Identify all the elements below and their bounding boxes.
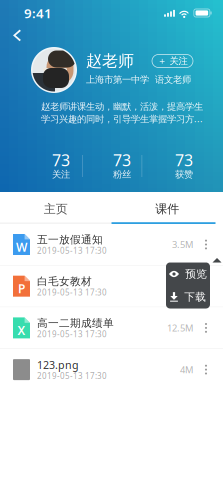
- staticText: 赵老师讲课生动，幽默，活泼，提高学生学习兴趣的同时，引导学生掌握学习方法、学习技…: [41, 101, 211, 125]
- staticText: 预览: [185, 267, 207, 280]
- staticText: 获赞: [175, 169, 193, 180]
- button[interactable]: More options: [197, 236, 215, 252]
- staticText: 上海市第一中学 语文老师: [86, 74, 191, 85]
- staticText: 73: [113, 149, 131, 171]
- staticText: 下载: [184, 290, 206, 303]
- staticText: X: [17, 322, 25, 338]
- button[interactable]: 123.png: [0, 349, 223, 390]
- button[interactable]: Back: [0, 26, 30, 45]
- button[interactable]: 73: [94, 153, 150, 179]
- staticText: P: [18, 281, 25, 297]
- staticText: 2019-05-13 17:30: [37, 370, 107, 381]
- staticText: 123.png: [37, 358, 79, 372]
- staticText: 73: [175, 149, 193, 171]
- button[interactable]: 下载: [166, 285, 210, 308]
- staticText: 粉丝: [113, 169, 131, 180]
- button[interactable]: P: [0, 266, 223, 307]
- button[interactable]: 主页: [0, 194, 111, 224]
- staticText: 白毛女教材: [37, 275, 92, 288]
- staticText: 高一二期成绩单: [37, 317, 114, 330]
- staticText: W: [16, 239, 27, 255]
- staticText: 关注: [52, 169, 70, 180]
- staticText: 3.5M: [172, 238, 193, 251]
- button[interactable]: More options: [197, 278, 215, 294]
- button[interactable]: W: [0, 224, 223, 265]
- button[interactable]: 课件: [111, 194, 223, 224]
- staticText: 9:41: [24, 4, 52, 22]
- button[interactable]: More options: [197, 362, 215, 378]
- button[interactable]: ＋ 关注: [152, 54, 193, 67]
- staticText: 2019-05-13 17:30: [37, 245, 107, 256]
- button[interactable]: X: [0, 307, 223, 348]
- staticText: 2019-05-13 17:30: [37, 329, 107, 339]
- staticText: 课件: [155, 202, 179, 216]
- button[interactable]: 73: [33, 153, 89, 179]
- staticText: 五一放假通知: [37, 233, 103, 246]
- staticText: 主页: [44, 202, 68, 216]
- staticText: 赵老师: [86, 51, 134, 71]
- button[interactable]: 预览: [166, 262, 210, 285]
- button[interactable]: More options: [197, 320, 215, 336]
- button[interactable]: 73: [156, 153, 212, 179]
- staticText: ＋ 关注: [157, 55, 187, 67]
- staticText: 2019-05-13 17:30: [37, 287, 107, 298]
- staticText: 4M: [180, 363, 193, 376]
- staticText: 12.5M: [167, 322, 193, 334]
- staticText: 73: [52, 149, 70, 171]
